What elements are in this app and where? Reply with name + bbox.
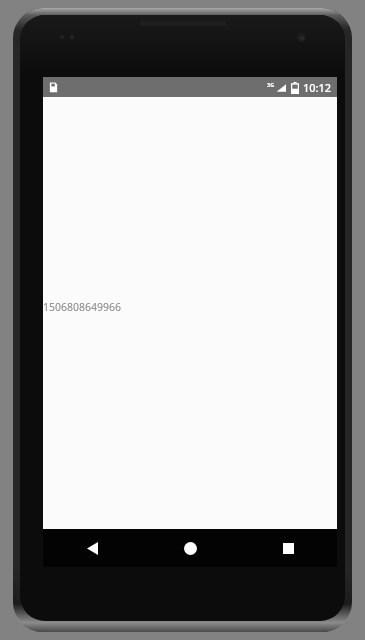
staticText: 3G [267, 81, 275, 88]
other: Notification [47, 81, 60, 94]
staticText: 1506808649966 [43, 300, 122, 314]
button[interactable]: Home [141, 529, 239, 567]
button[interactable]: Recent apps [239, 529, 337, 567]
staticText: 10:12 [303, 80, 332, 95]
button[interactable]: Back [43, 529, 141, 567]
